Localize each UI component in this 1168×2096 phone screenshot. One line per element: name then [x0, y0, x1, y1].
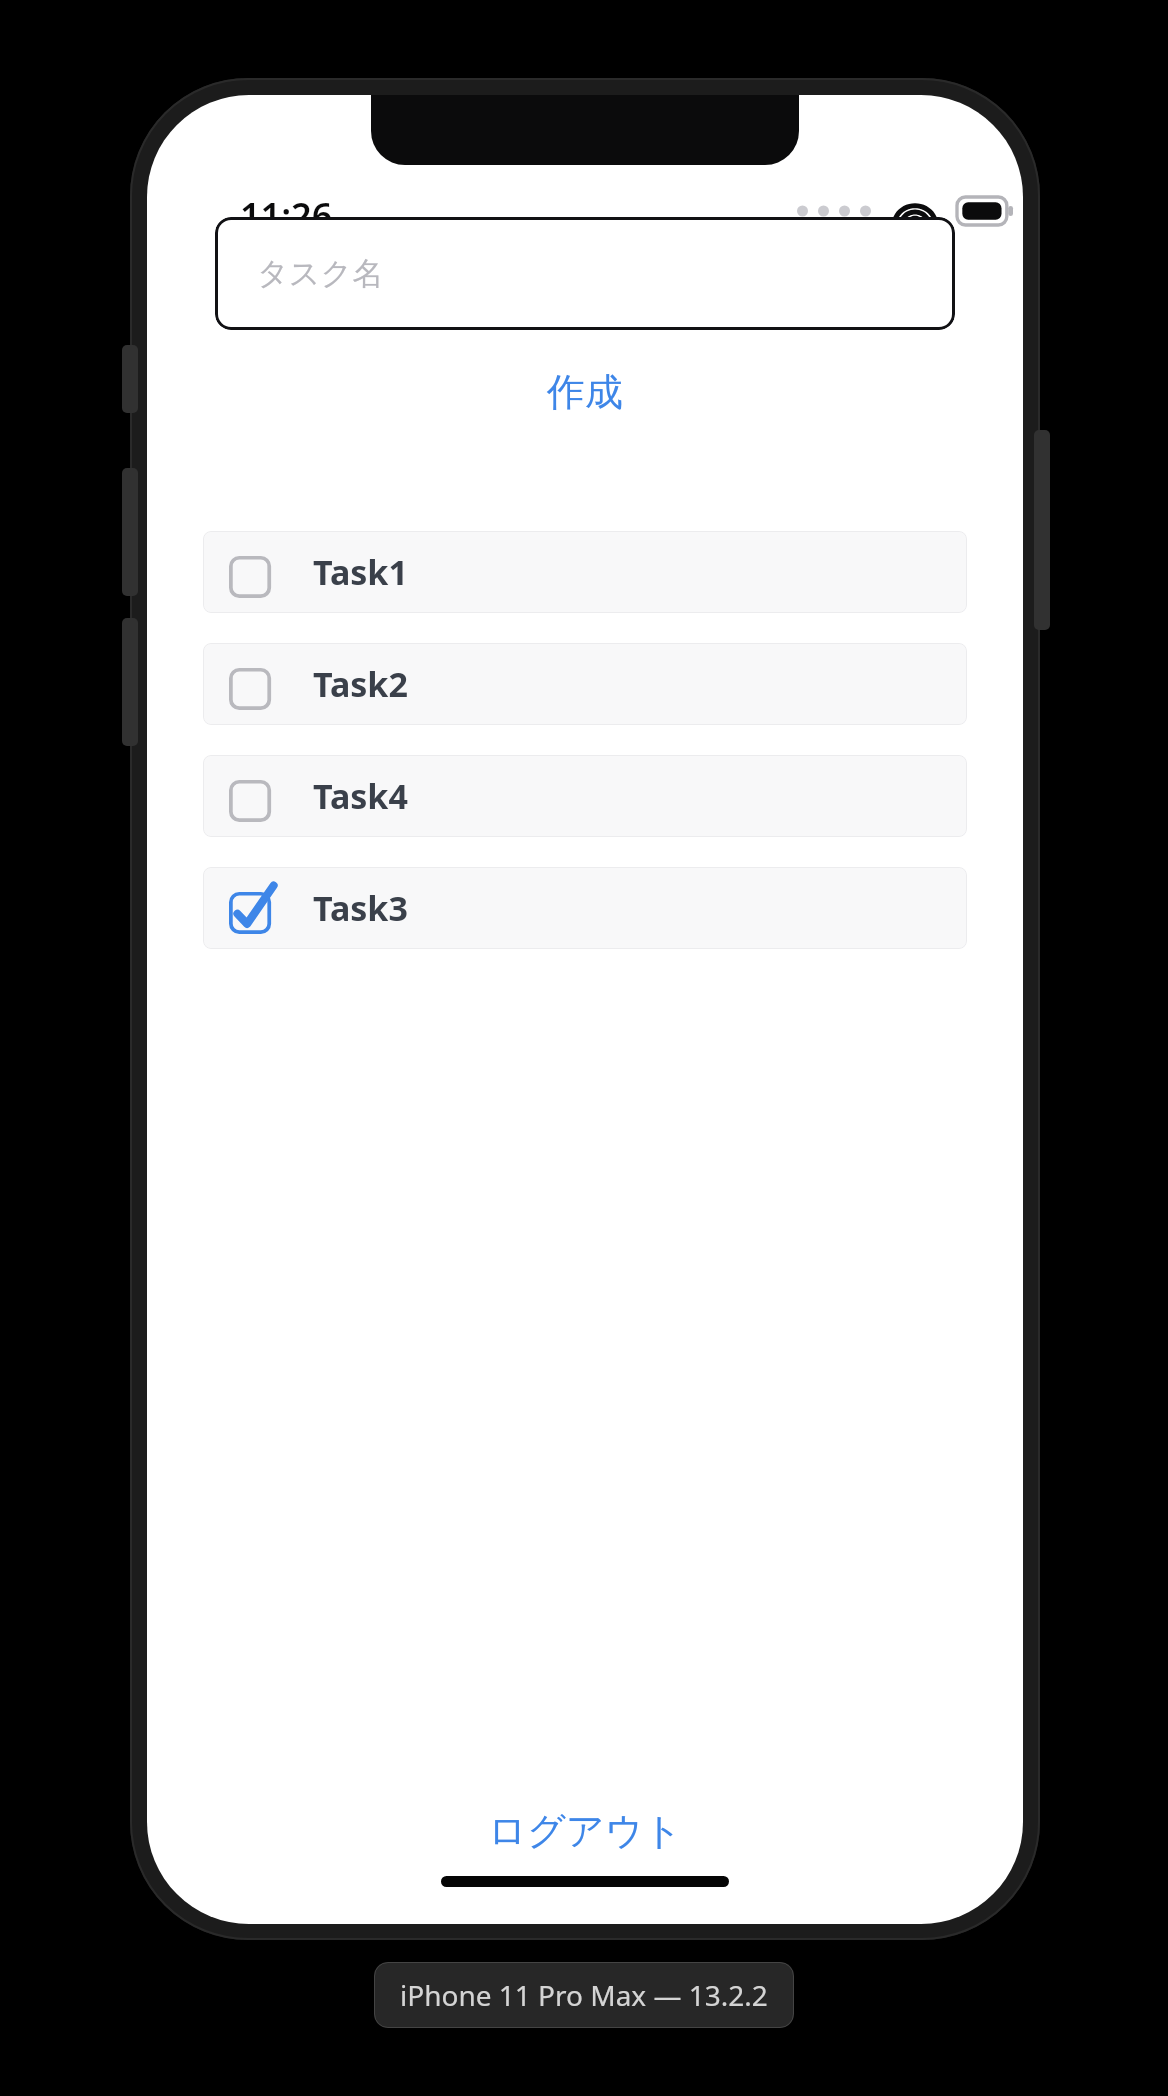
staticText: Task4 — [313, 773, 408, 819]
staticText: ログアウト — [488, 1807, 683, 1855]
other: Task done — [229, 882, 281, 934]
staticText: タスク名 — [257, 254, 384, 293]
staticText: Task3 — [313, 885, 408, 931]
button[interactable]: タスク名 — [215, 217, 955, 330]
staticText: 作成 — [547, 368, 623, 416]
staticText: Task1 — [313, 549, 408, 595]
other: Task not done — [229, 658, 281, 710]
button[interactable]: Task done — [203, 867, 967, 949]
staticText: 11:26 — [240, 191, 333, 240]
other: Task not done — [229, 770, 281, 822]
button[interactable]: Task not done — [203, 531, 967, 613]
staticText: Task2 — [313, 661, 408, 707]
button[interactable]: ログアウト — [462, 1795, 709, 1867]
staticText: iPhone 11 Pro Max — 13.2.2 — [400, 1976, 768, 2014]
button[interactable]: Task not done — [203, 755, 967, 837]
button[interactable]: Task not done — [203, 643, 967, 725]
other: Task not done — [229, 546, 281, 598]
button[interactable]: 作成 — [147, 358, 1023, 426]
